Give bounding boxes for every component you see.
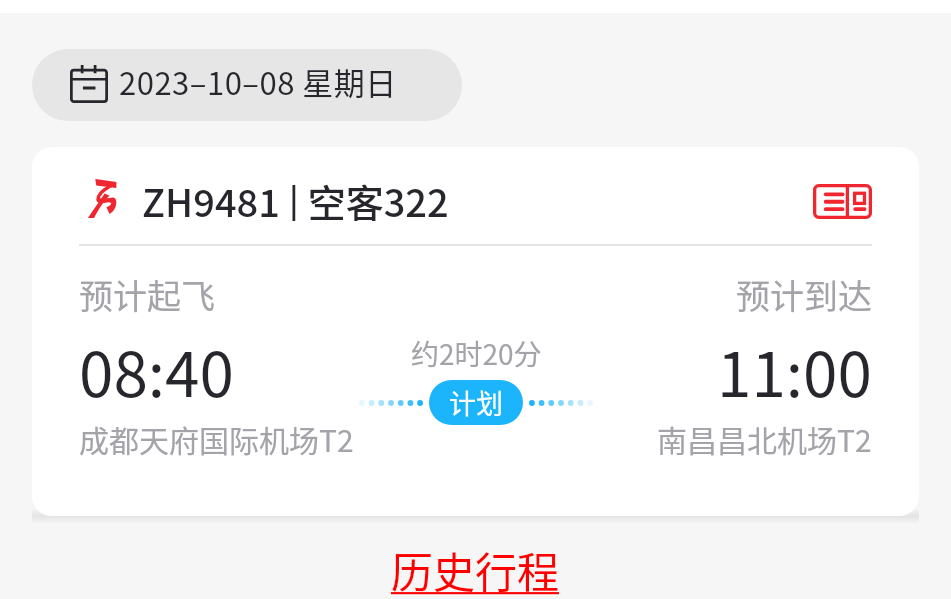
staticText: 南昌昌北机场T2 bbox=[657, 417, 872, 460]
staticText: 约2时20分 bbox=[411, 333, 542, 374]
other: Boarding pass details bbox=[813, 184, 872, 219]
button[interactable]: 2023–10–08 星期日 bbox=[32, 49, 462, 121]
staticText: 预计起飞 bbox=[79, 270, 215, 319]
button[interactable]: Boarding pass details bbox=[809, 177, 872, 221]
staticText: 08:40 bbox=[79, 325, 234, 415]
staticText: 预计到达 bbox=[736, 270, 872, 319]
staticText: 2023–10–08 星期日 bbox=[119, 59, 397, 104]
button[interactable]: 历史行程 bbox=[377, 531, 574, 599]
staticText: 历史行程 bbox=[391, 539, 560, 599]
staticText: 成都天府国际机场T2 bbox=[79, 417, 354, 460]
staticText: 计划 bbox=[449, 383, 503, 422]
staticText: ZH9481 | 空客322 bbox=[142, 173, 449, 221]
staticText: 11:00 bbox=[717, 325, 872, 415]
button[interactable]: ZH9481 | 空客322 bbox=[32, 147, 919, 516]
